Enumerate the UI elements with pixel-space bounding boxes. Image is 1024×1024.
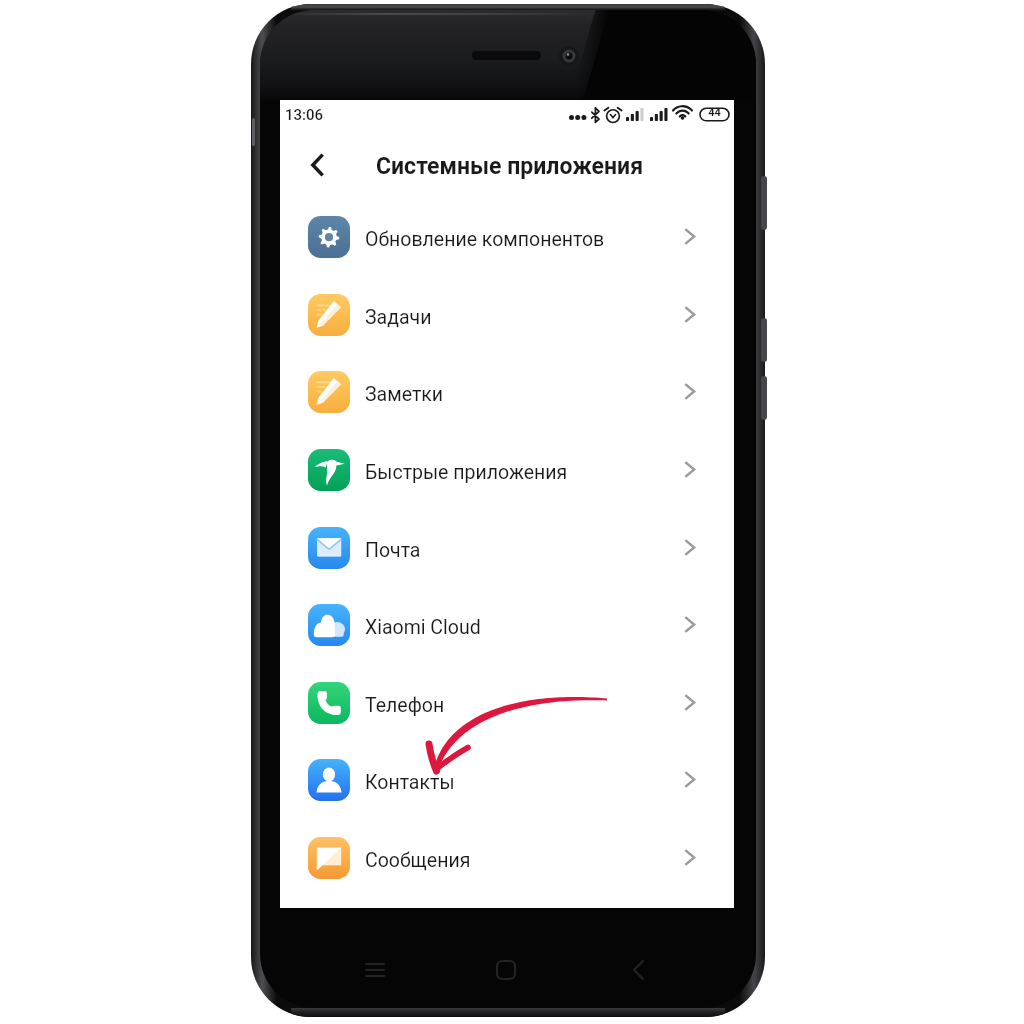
button[interactable]: Почта: [280, 509, 734, 587]
button[interactable]: Задачи: [280, 276, 734, 354]
staticText: Задачи: [365, 306, 432, 329]
staticText: 13:06: [285, 106, 324, 124]
button[interactable]: Recent apps: [263, 935, 427, 1005]
button[interactable]: Обновление компонентов: [280, 198, 734, 276]
button[interactable]: Back: [590, 935, 753, 1005]
staticText: Заметки: [365, 383, 444, 406]
button[interactable]: Заметки: [280, 353, 734, 431]
button[interactable]: Xiaomi Cloud: [280, 586, 734, 664]
staticText: Телефон: [365, 694, 445, 717]
staticText: 44: [700, 106, 729, 119]
button[interactable]: Back: [298, 145, 338, 185]
button[interactable]: Контакты: [280, 741, 734, 819]
button[interactable]: Сообщения: [280, 819, 734, 897]
staticText: Xiaomi Cloud: [365, 616, 481, 639]
staticText: Системные приложения: [376, 153, 644, 180]
staticText: Контакты: [365, 771, 455, 794]
staticText: Сообщения: [365, 849, 471, 872]
staticText: Обновление компонентов: [365, 228, 605, 251]
staticText: Почта: [365, 539, 421, 562]
button[interactable]: Телефон: [280, 664, 734, 742]
button[interactable]: Быстрые приложения: [280, 431, 734, 509]
staticText: Быстрые приложения: [365, 461, 568, 484]
button[interactable]: Home: [427, 935, 590, 1005]
